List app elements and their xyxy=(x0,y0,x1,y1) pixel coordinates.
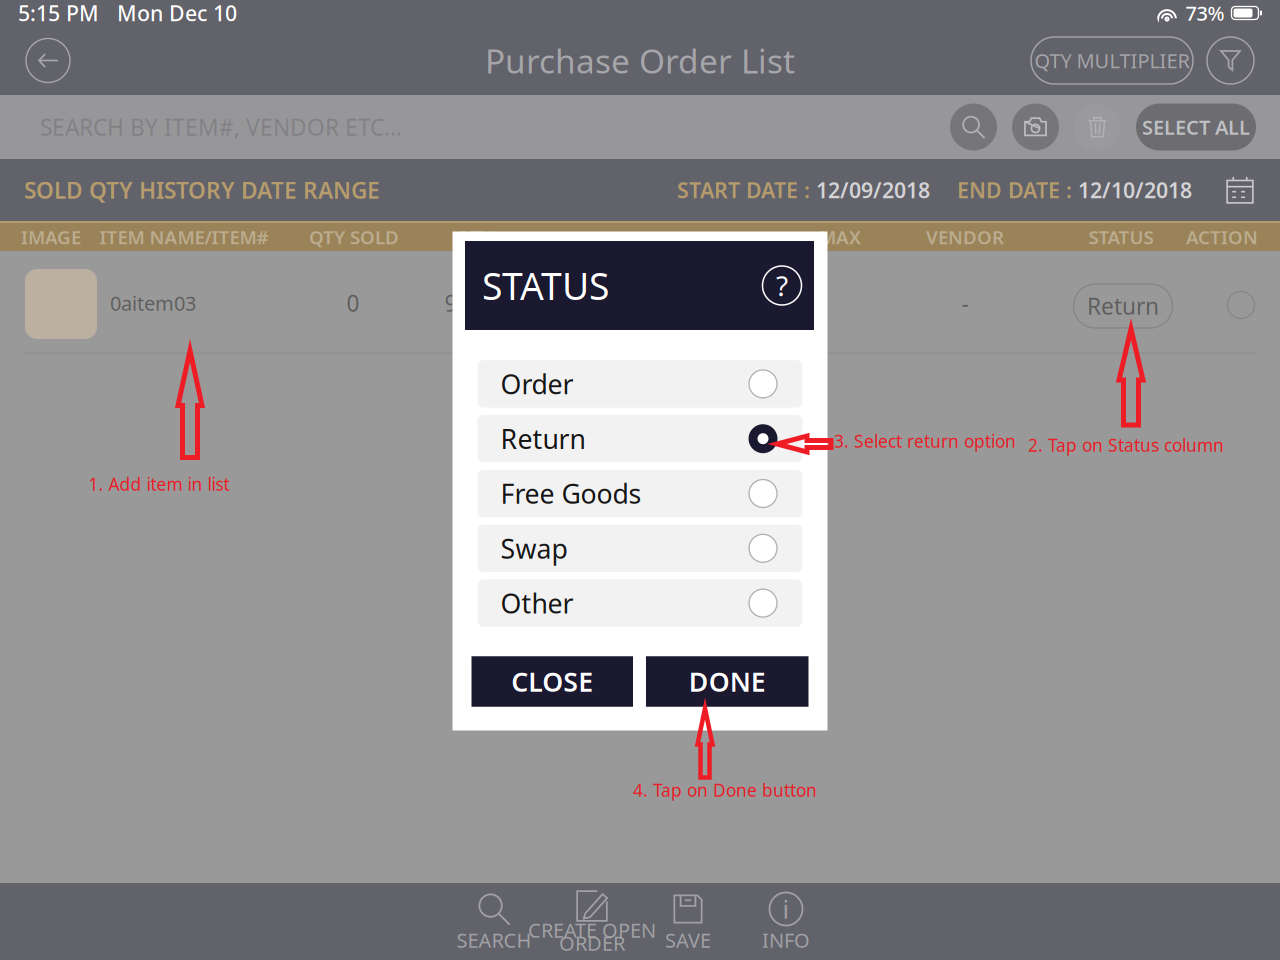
staticText: SOLD QTY HISTORY DATE RANGE xyxy=(24,175,380,205)
staticText: STATUS xyxy=(1088,225,1153,249)
staticText: i xyxy=(782,892,789,926)
staticText: 1. Add item in list xyxy=(88,472,229,495)
staticText: CREATE OPEN xyxy=(528,917,656,943)
staticText: 12/10/2018 xyxy=(1078,176,1192,204)
staticText: QTY MULTIPLIER xyxy=(1034,47,1189,74)
button[interactable]: Return xyxy=(1073,284,1172,328)
staticText: ORDER xyxy=(559,930,625,956)
button[interactable]: CREATE OPEN xyxy=(507,883,677,960)
staticText: Return xyxy=(500,421,585,456)
staticText: Order xyxy=(500,366,573,402)
staticText: Swap xyxy=(500,531,567,566)
button[interactable]: Help xyxy=(760,263,804,307)
staticText: 3. Select return option xyxy=(834,429,1016,452)
staticText: ? xyxy=(776,267,788,304)
button[interactable]: Other xyxy=(477,579,802,627)
staticText: START DATE : xyxy=(677,176,816,204)
staticText: SAVE xyxy=(665,927,711,953)
staticText: 5:15 PM xyxy=(18,0,99,27)
staticText: DONE xyxy=(689,664,766,699)
button[interactable]: SAVE xyxy=(603,883,773,960)
staticText: 73% xyxy=(1185,0,1224,26)
staticText: MAX xyxy=(819,225,861,249)
staticText: Mon Dec 10 xyxy=(117,0,237,27)
staticText: SEARCH xyxy=(456,927,531,953)
staticText: Free Goods xyxy=(500,476,641,511)
staticText: INFO xyxy=(762,927,810,953)
staticText: 4. Tap on Done button xyxy=(633,778,817,801)
staticText: CLOSE xyxy=(511,664,593,699)
staticText: ACTION xyxy=(1186,225,1258,249)
staticText: STATUS xyxy=(482,261,609,310)
button[interactable]: Swap xyxy=(477,524,802,572)
staticText: Return xyxy=(1087,291,1159,321)
button[interactable]: i xyxy=(701,883,871,960)
button[interactable]: QTY MULTIPLIER xyxy=(1031,37,1193,84)
staticText: ITEM NAME/ITEM# xyxy=(99,225,268,249)
staticText: 0 xyxy=(346,288,359,318)
staticText: Purchase Order List xyxy=(485,38,795,83)
button[interactable]: SEARCH xyxy=(409,883,579,960)
staticText: - xyxy=(961,288,968,318)
staticText: 2. Tap on Status column xyxy=(1028,433,1224,456)
staticText: QTY xyxy=(456,225,492,249)
button[interactable]: Back xyxy=(26,38,70,82)
staticText: Other xyxy=(500,585,573,621)
button[interactable]: CLOSE xyxy=(471,656,633,707)
button[interactable]: Select row xyxy=(1214,281,1268,329)
button[interactable]: DONE xyxy=(646,656,808,707)
button[interactable]: SELECT ALL xyxy=(1136,103,1256,150)
button[interactable]: Delete xyxy=(1074,103,1121,150)
staticText: SELECT ALL xyxy=(1142,114,1250,140)
staticText: END DATE : xyxy=(957,176,1078,204)
staticText: 0aitem03 xyxy=(110,290,196,316)
button[interactable]: Return xyxy=(477,415,802,462)
staticText: SEARCH BY ITEM#, VENDOR ETC... xyxy=(40,112,402,142)
staticText: VENDOR xyxy=(926,225,1004,249)
button[interactable]: Scan barcode xyxy=(1012,103,1059,150)
staticText: IMAGE xyxy=(21,225,81,249)
button[interactable]: Order xyxy=(477,360,802,408)
button[interactable]: Pick dates xyxy=(1218,168,1262,212)
staticText: 9 xyxy=(444,288,457,318)
button[interactable]: Free Goods xyxy=(477,470,802,517)
button[interactable]: Filter xyxy=(1207,37,1254,84)
staticText: QTY SOLD xyxy=(309,225,399,249)
button[interactable]: Search xyxy=(950,103,997,150)
staticText: 12/09/2018 xyxy=(816,176,930,204)
